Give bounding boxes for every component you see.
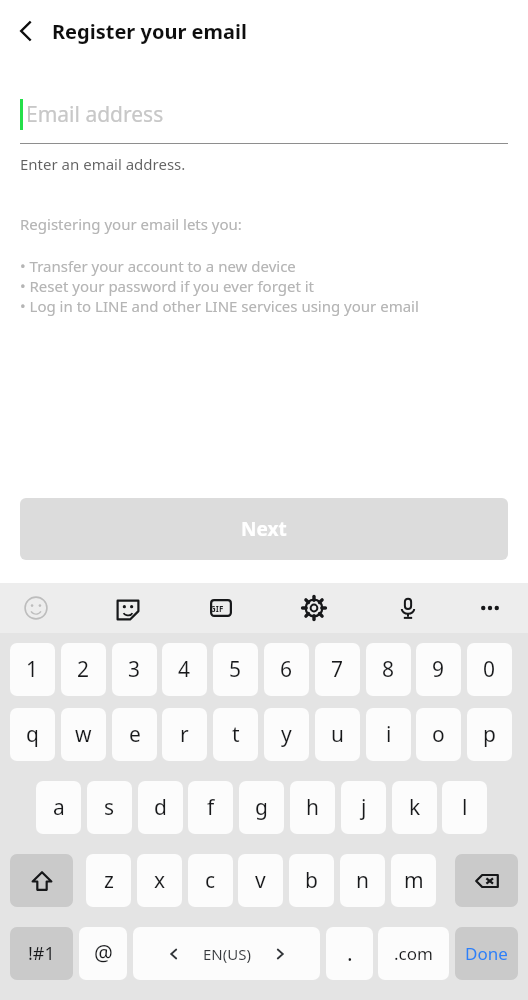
button[interactable]: Email address xyxy=(20,97,508,131)
staticText: g xyxy=(255,793,268,822)
staticText: 2 xyxy=(77,655,90,684)
staticText: v xyxy=(255,866,266,895)
staticText: • Reset your password if you ever forget… xyxy=(20,276,315,296)
button[interactable]: Settings xyxy=(298,592,330,624)
staticText: r xyxy=(180,720,189,749)
button[interactable]: t xyxy=(213,708,258,761)
staticText: 3 xyxy=(128,655,141,684)
staticText: Done xyxy=(465,942,508,965)
staticText: x xyxy=(154,866,166,895)
staticText: k xyxy=(409,793,421,822)
button[interactable]: 2 xyxy=(61,643,106,696)
staticText: GIF xyxy=(210,603,224,614)
button[interactable]: e xyxy=(112,708,157,761)
button[interactable]: z xyxy=(86,854,131,907)
button[interactable]: EN(US) xyxy=(133,927,320,980)
staticText: j xyxy=(361,793,367,822)
button[interactable]: a xyxy=(36,781,81,834)
staticText: Email address xyxy=(26,100,164,129)
staticText: l xyxy=(462,793,468,822)
staticText: y xyxy=(281,720,292,749)
staticText: m xyxy=(404,866,424,895)
staticText: 5 xyxy=(229,655,242,684)
button[interactable]: j xyxy=(341,781,386,834)
staticText: 7 xyxy=(331,655,344,684)
button[interactable]: Done xyxy=(455,927,518,980)
button[interactable]: !#1 xyxy=(10,927,73,980)
button[interactable]: 3 xyxy=(112,643,157,696)
staticText: d xyxy=(154,793,167,822)
button[interactable]: 7 xyxy=(315,643,360,696)
button[interactable]: Backspace xyxy=(455,854,518,907)
button[interactable]: f xyxy=(188,781,233,834)
button[interactable]: 5 xyxy=(213,643,258,696)
staticText: Register your email xyxy=(52,18,247,45)
staticText: o xyxy=(432,720,445,749)
staticText: p xyxy=(483,720,496,749)
staticText: Enter an email address. xyxy=(20,154,186,174)
staticText: Registering your email lets you: xyxy=(20,214,242,234)
button[interactable]: q xyxy=(10,708,55,761)
button[interactable]: Next xyxy=(20,498,508,560)
staticText: q xyxy=(26,720,39,749)
button[interactable]: 8 xyxy=(366,643,411,696)
staticText: 6 xyxy=(280,655,293,684)
button[interactable]: 1 xyxy=(10,643,55,696)
staticText: . xyxy=(347,939,353,968)
button[interactable]: 9 xyxy=(416,643,461,696)
button[interactable]: i xyxy=(366,708,411,761)
button[interactable]: Emoji xyxy=(20,592,52,624)
button[interactable]: Back xyxy=(0,5,52,57)
button[interactable]: @ xyxy=(79,927,127,980)
staticText: s xyxy=(104,793,115,822)
button[interactable]: .com xyxy=(378,927,449,980)
button[interactable]: u xyxy=(315,708,360,761)
button[interactable]: h xyxy=(290,781,335,834)
staticText: z xyxy=(104,866,114,895)
staticText: t xyxy=(232,720,240,749)
button[interactable]: l xyxy=(442,781,487,834)
button[interactable]: w xyxy=(61,708,106,761)
staticText: !#1 xyxy=(28,941,55,966)
staticText: i xyxy=(386,720,392,749)
button[interactable]: o xyxy=(416,708,461,761)
button[interactable]: g xyxy=(239,781,284,834)
button[interactable]: v xyxy=(238,854,283,907)
staticText: 0 xyxy=(483,655,496,684)
button[interactable]: d xyxy=(138,781,183,834)
staticText: e xyxy=(129,720,141,749)
staticText: @ xyxy=(94,939,113,968)
button[interactable]: k xyxy=(392,781,437,834)
button[interactable]: Sticker xyxy=(112,592,144,624)
button[interactable]: Shift xyxy=(10,854,73,907)
staticText: 4 xyxy=(178,655,191,684)
button[interactable]: Voice input xyxy=(392,592,424,624)
button[interactable]: m xyxy=(391,854,436,907)
staticText: 8 xyxy=(382,655,395,684)
staticText: 1 xyxy=(26,655,39,684)
button[interactable]: 0 xyxy=(467,643,512,696)
button[interactable]: s xyxy=(87,781,132,834)
button[interactable]: y xyxy=(264,708,309,761)
staticText: a xyxy=(53,793,65,822)
button[interactable]: b xyxy=(289,854,334,907)
button[interactable]: r xyxy=(162,708,207,761)
staticText: u xyxy=(331,720,344,749)
staticText: Next xyxy=(241,516,287,542)
staticText: • Transfer your account to a new device xyxy=(20,256,296,276)
staticText: 9 xyxy=(432,655,445,684)
button[interactable]: x xyxy=(137,854,182,907)
staticText: f xyxy=(207,793,215,822)
staticText: w xyxy=(75,720,92,749)
button[interactable]: . xyxy=(326,927,373,980)
button[interactable]: c xyxy=(188,854,233,907)
staticText: b xyxy=(305,866,318,895)
staticText: EN(US) xyxy=(203,944,251,964)
button[interactable]: 4 xyxy=(162,643,207,696)
button[interactable]: GIF xyxy=(205,592,237,624)
button[interactable]: p xyxy=(467,708,512,761)
staticText: n xyxy=(356,866,369,895)
button[interactable]: More options xyxy=(474,592,506,624)
button[interactable]: 6 xyxy=(264,643,309,696)
button[interactable]: n xyxy=(340,854,385,907)
